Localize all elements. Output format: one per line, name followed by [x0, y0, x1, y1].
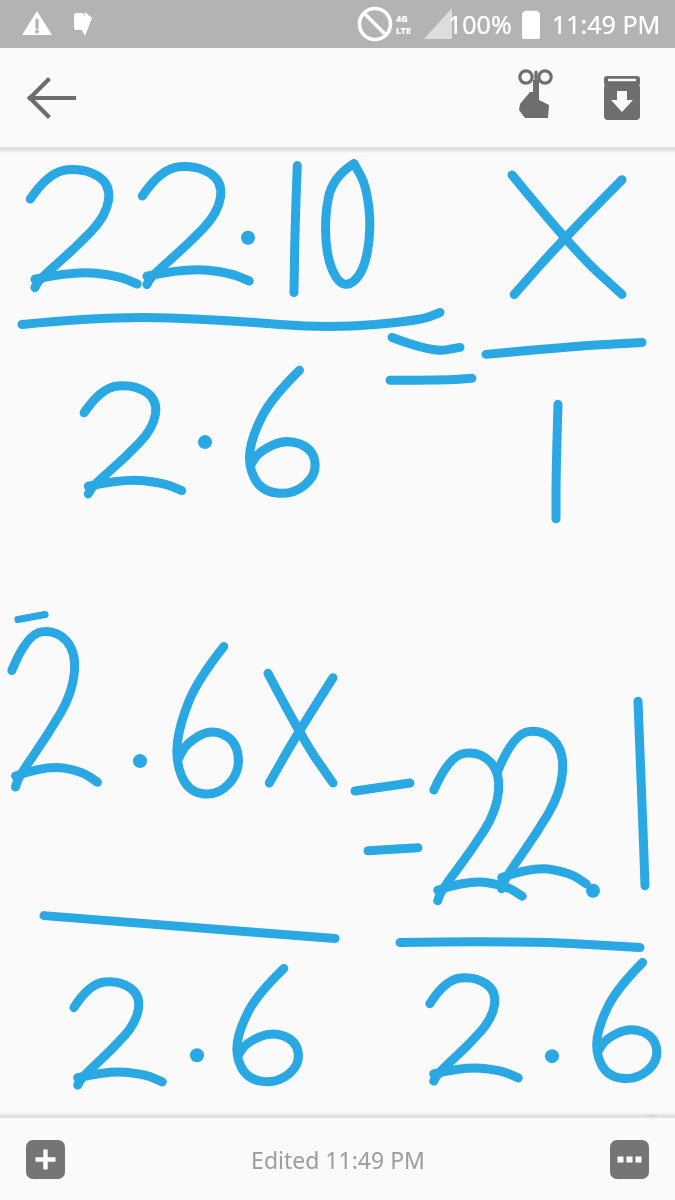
staticText: 100%	[448, 7, 512, 41]
button[interactable]: Add	[26, 1140, 65, 1179]
staticText: LTE	[396, 24, 412, 36]
staticText: Edited 11:49 PM	[251, 1144, 425, 1175]
staticText: 4G	[396, 12, 408, 24]
button[interactable]: More options	[610, 1140, 649, 1179]
button[interactable]: Reminder	[501, 65, 567, 131]
button[interactable]: Archive	[589, 65, 655, 131]
button[interactable]: Back	[18, 64, 86, 132]
staticText: 11:49 PM	[552, 7, 661, 41]
